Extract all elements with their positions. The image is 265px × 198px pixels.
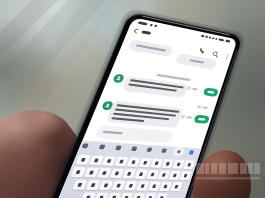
button[interactable]: Phone showing a messaging conversation [0, 0, 265, 198]
